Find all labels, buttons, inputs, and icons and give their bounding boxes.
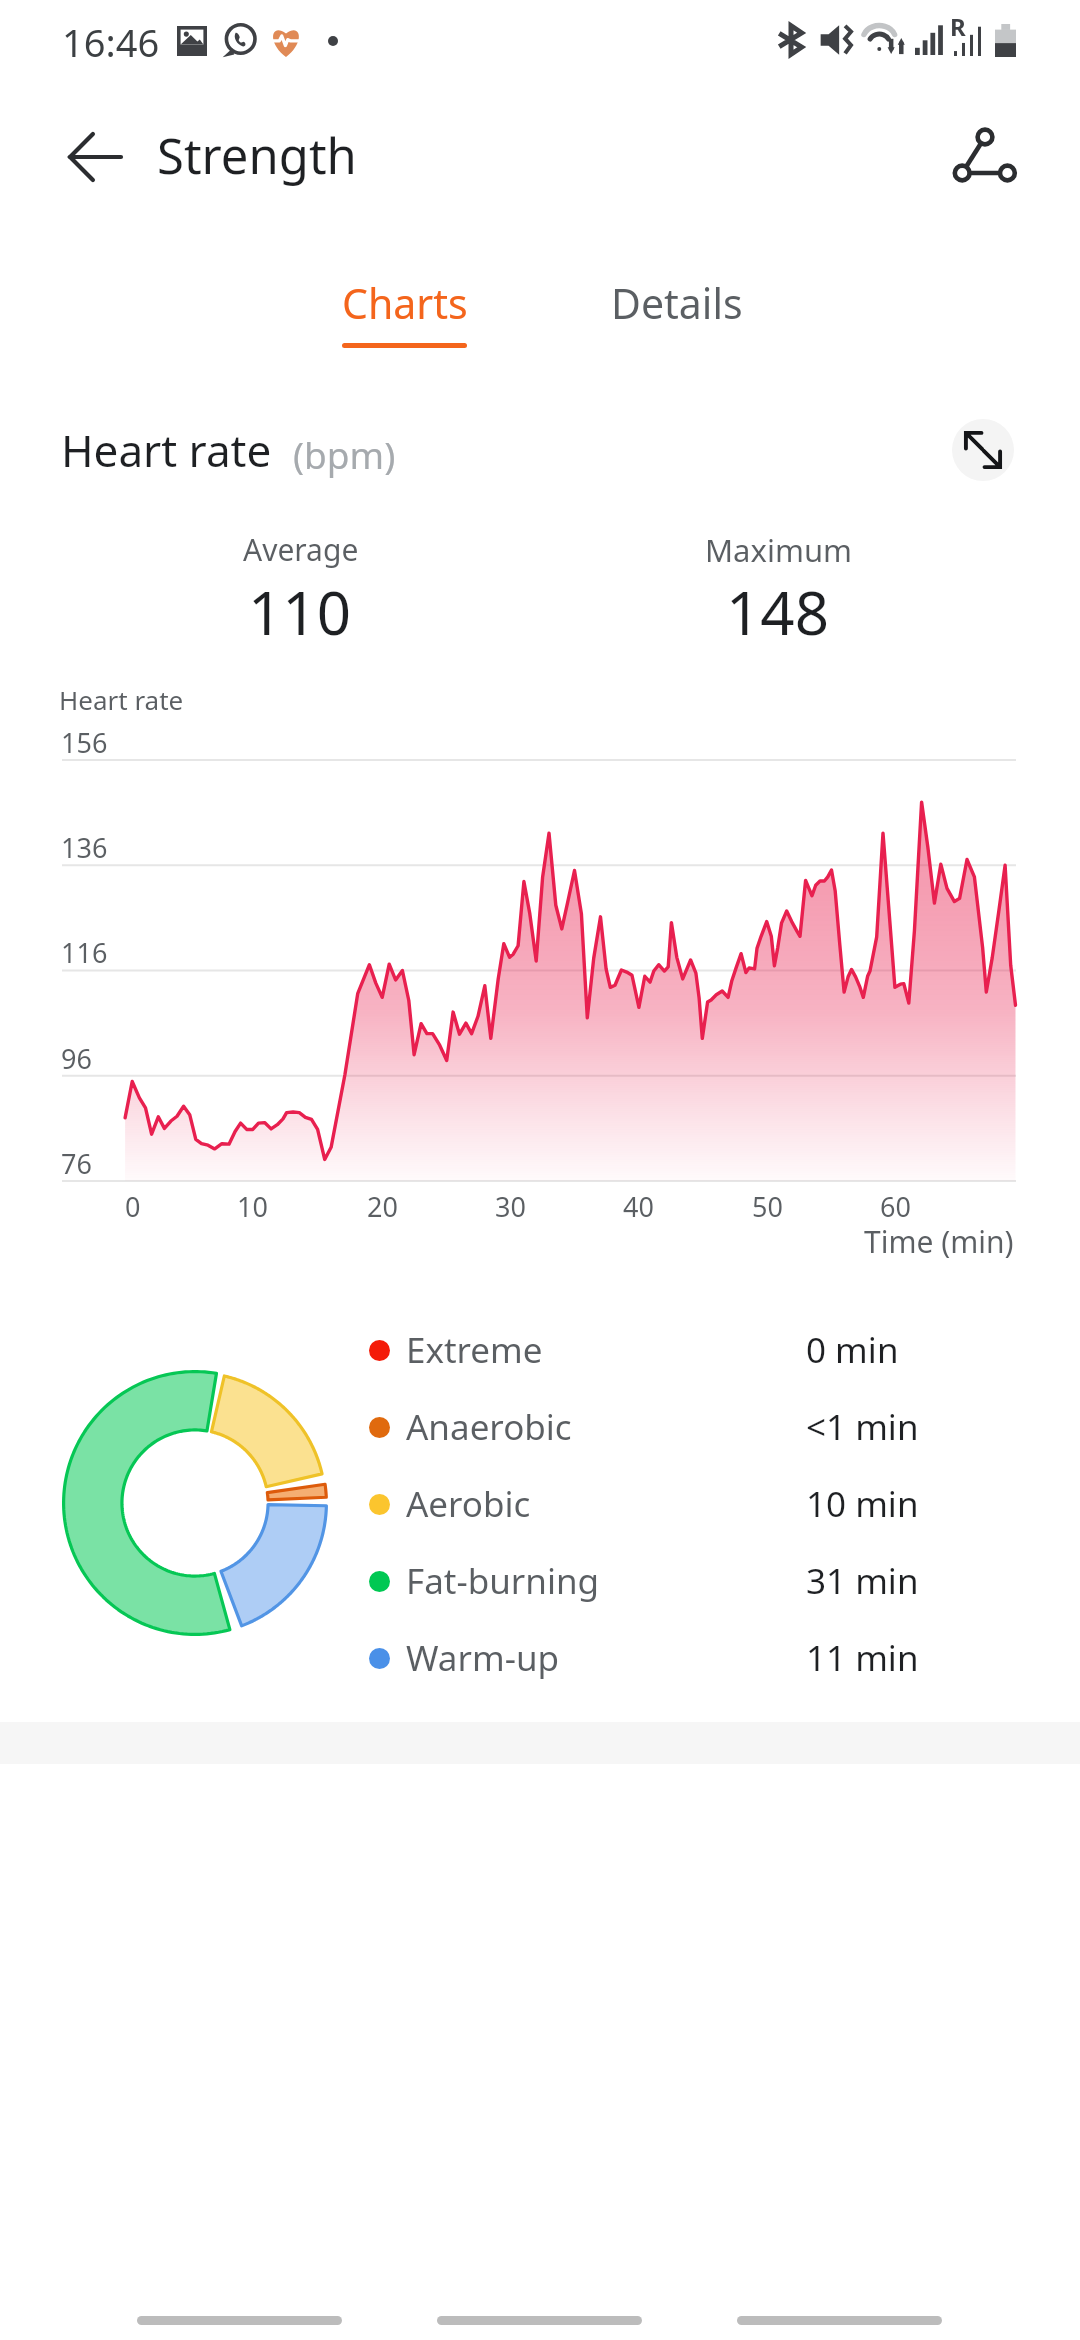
- staticText: 30: [495, 1188, 526, 1225]
- staticText: Warm-up: [406, 1634, 560, 1682]
- staticText: Extreme: [406, 1326, 543, 1374]
- button[interactable]: Aerobic: [355, 1466, 965, 1542]
- staticText: 10: [237, 1188, 268, 1225]
- staticText: 50: [752, 1188, 783, 1225]
- staticText: Aerobic: [406, 1480, 531, 1528]
- staticText: 40: [623, 1188, 654, 1225]
- staticText: 60: [880, 1188, 911, 1225]
- staticText: Fat-burning: [406, 1557, 600, 1605]
- staticText: Heart rate: [59, 682, 184, 717]
- staticText: Time (min): [864, 1221, 1014, 1262]
- staticText: 156: [61, 724, 108, 761]
- staticText: 96: [61, 1040, 92, 1077]
- staticText: 136: [61, 829, 108, 866]
- staticText: Strength: [157, 122, 357, 189]
- staticText: 116: [61, 934, 108, 971]
- staticText: Anaerobic: [406, 1403, 572, 1451]
- button[interactable]: Extreme: [355, 1312, 965, 1388]
- staticText: Heart rate: [61, 420, 272, 480]
- staticText: 76: [61, 1145, 92, 1182]
- staticText: 20: [367, 1188, 398, 1225]
- staticText: R: [950, 10, 966, 43]
- staticText: 148: [726, 571, 829, 653]
- button[interactable]: Fat-burning: [355, 1543, 965, 1619]
- staticText: Maximum: [705, 529, 853, 571]
- button[interactable]: Back: [48, 110, 142, 204]
- staticText: Details: [611, 275, 743, 331]
- staticText: <1 min: [806, 1403, 919, 1451]
- staticText: 110: [248, 571, 351, 653]
- button[interactable]: Details: [545, 248, 815, 360]
- button[interactable]: Charts: [270, 248, 540, 360]
- staticText: 0: [125, 1188, 141, 1225]
- button[interactable]: Expand chart: [952, 419, 1014, 481]
- button[interactable]: Warm-up: [355, 1620, 965, 1696]
- staticText: 10 min: [806, 1480, 919, 1528]
- staticText: 11 min: [806, 1634, 919, 1682]
- staticText: 0 min: [806, 1326, 899, 1374]
- staticText: Charts: [342, 275, 468, 331]
- button[interactable]: Share: [935, 105, 1035, 205]
- staticText: (bpm): [293, 429, 396, 479]
- staticText: 31 min: [806, 1557, 919, 1605]
- staticText: 16:46: [62, 16, 160, 68]
- button[interactable]: Anaerobic: [355, 1389, 965, 1465]
- staticText: Average: [243, 529, 359, 570]
